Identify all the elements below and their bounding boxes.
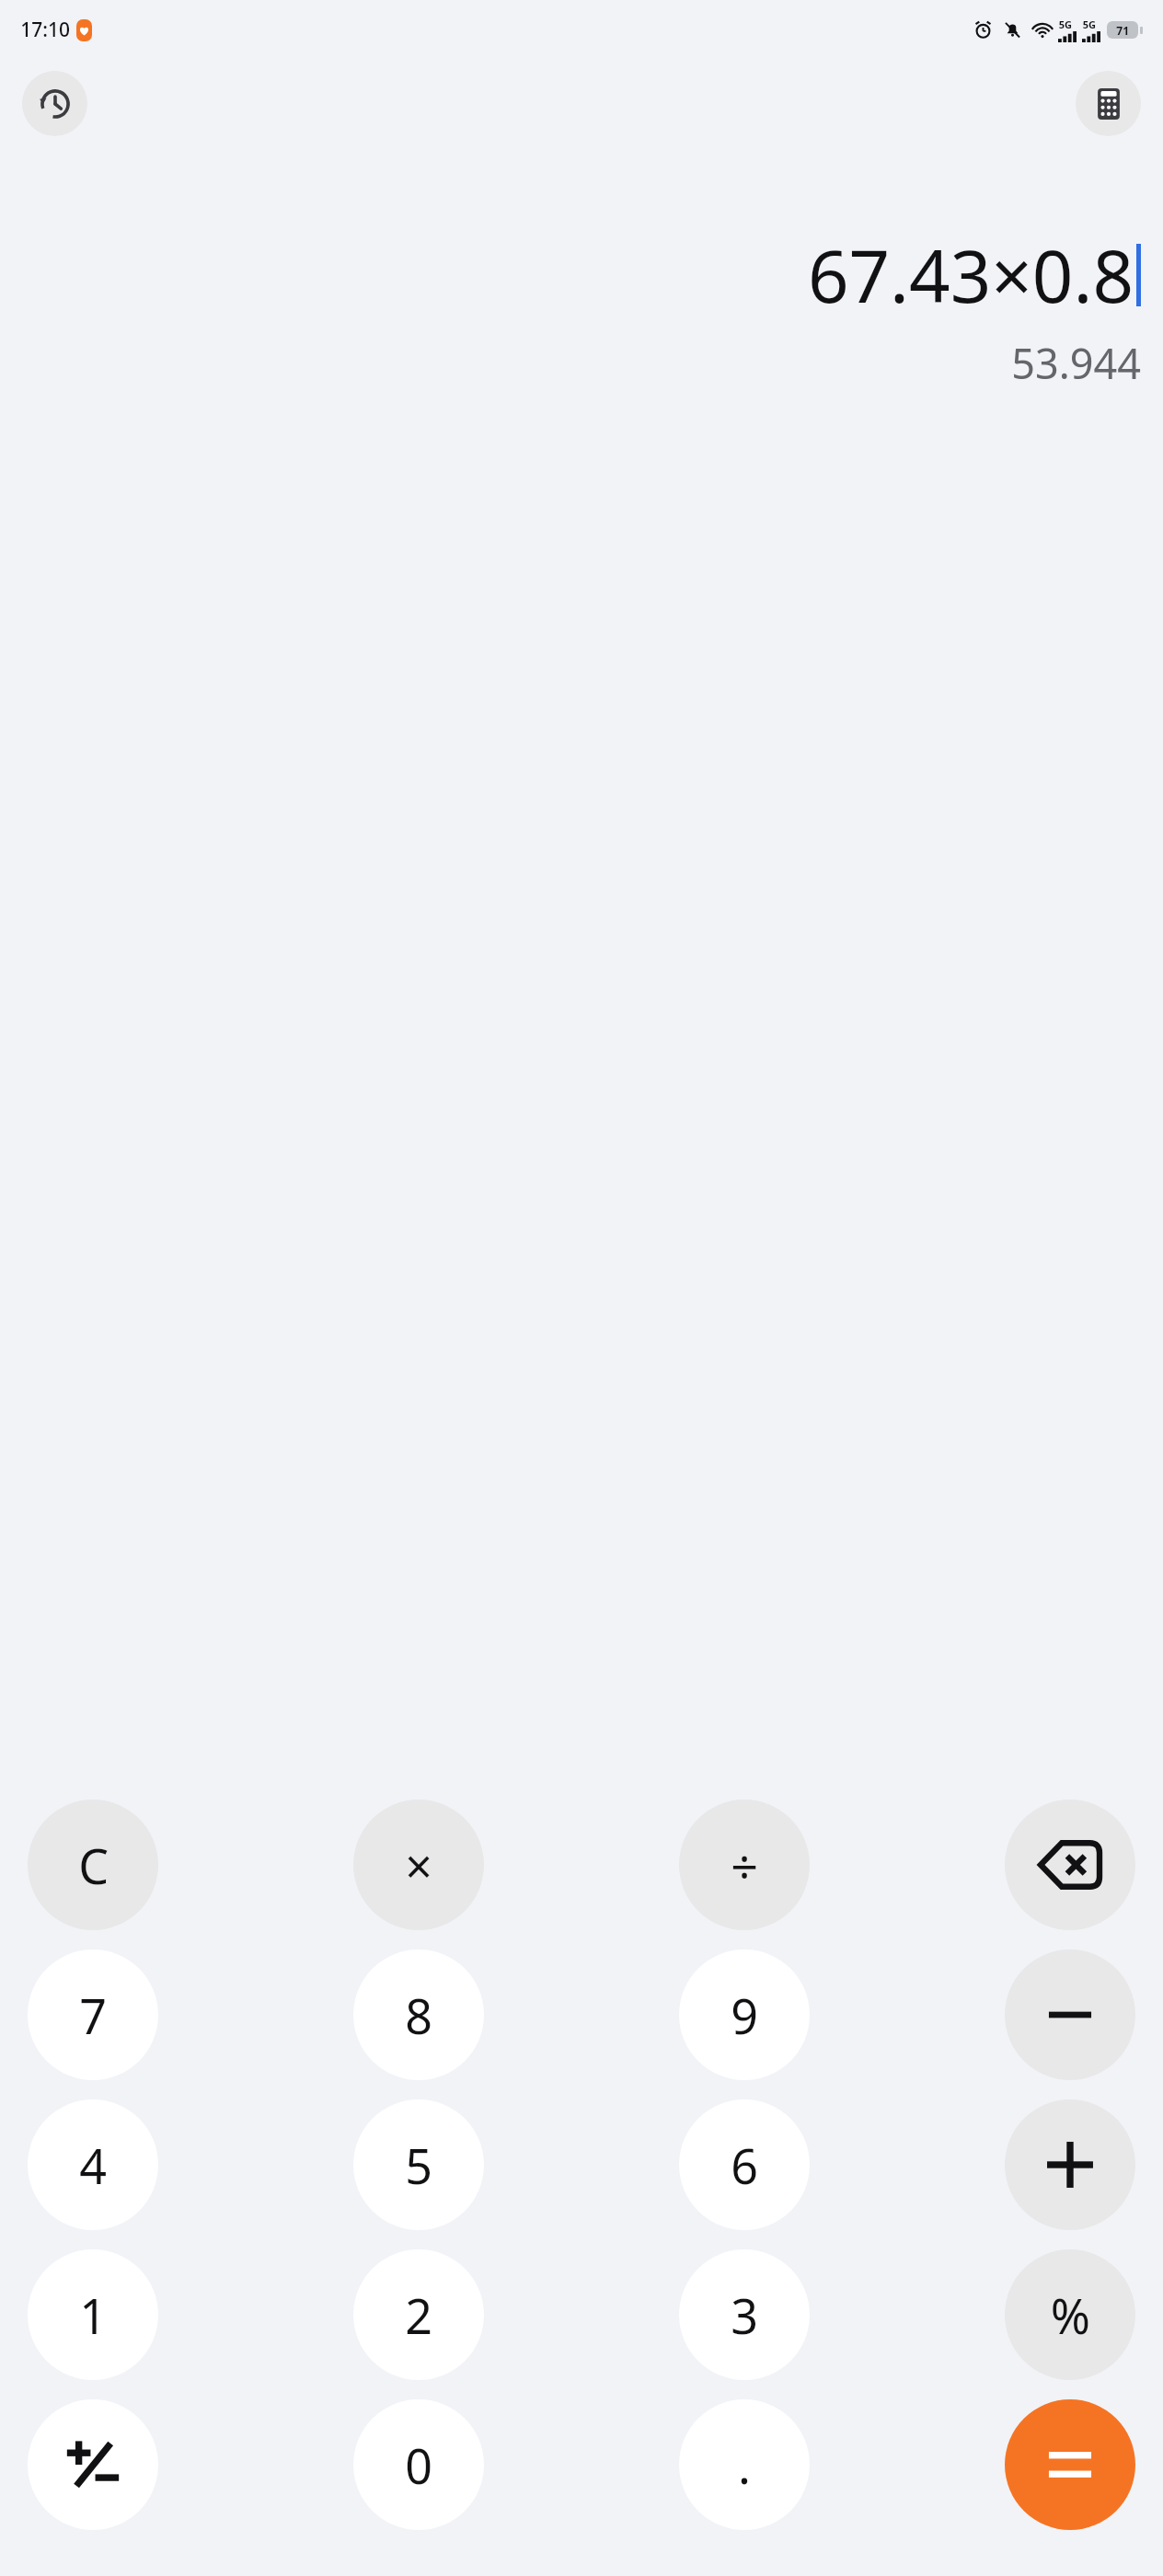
staticText: 5G — [1082, 17, 1096, 31]
button[interactable]: History — [22, 71, 87, 136]
button[interactable]: 3 — [679, 2249, 810, 2380]
button[interactable]: Backspace — [1005, 1800, 1135, 1930]
button[interactable]: Calculator mode — [1076, 71, 1141, 136]
staticText: × — [405, 1833, 432, 1898]
button[interactable]: 4 — [28, 2099, 158, 2230]
staticText: 6 — [731, 2133, 758, 2198]
staticText: 8 — [405, 1983, 432, 2048]
staticText: 4 — [79, 2133, 107, 2198]
staticText: 67.43×0.8 — [807, 226, 1134, 324]
staticText: % — [1050, 2283, 1090, 2348]
button[interactable]: 2 — [353, 2249, 484, 2380]
staticText: ÷ — [731, 1833, 758, 1898]
button[interactable]: 1 — [28, 2249, 158, 2380]
button[interactable]: C — [28, 1800, 158, 1930]
button[interactable]: 0 — [353, 2399, 484, 2530]
staticText: 17:10 — [20, 17, 70, 43]
button[interactable]: × — [353, 1800, 484, 1930]
staticText: 0 — [405, 2432, 432, 2498]
staticText: 71 — [1116, 23, 1129, 38]
staticText: 9 — [731, 1983, 758, 2048]
staticText: 5 — [405, 2133, 432, 2198]
staticText: 3 — [731, 2283, 758, 2348]
staticText: . — [738, 2432, 751, 2498]
button[interactable]: % — [1005, 2249, 1135, 2380]
button[interactable]: 9 — [679, 1949, 810, 2080]
button[interactable]: Minus — [1005, 1949, 1135, 2080]
staticText: 5G — [1058, 17, 1072, 31]
button[interactable]: 5 — [353, 2099, 484, 2230]
button[interactable]: Plus minus sign — [28, 2399, 158, 2530]
button[interactable]: ÷ — [679, 1800, 810, 1930]
button[interactable]: Plus — [1005, 2099, 1135, 2230]
staticText: 53.944 — [1011, 335, 1141, 391]
button[interactable]: . — [679, 2399, 810, 2530]
staticText: 2 — [405, 2283, 432, 2348]
button[interactable]: 8 — [353, 1949, 484, 2080]
staticText: 1 — [79, 2283, 107, 2348]
button[interactable]: 7 — [28, 1949, 158, 2080]
staticText: 7 — [79, 1983, 107, 2048]
button[interactable]: Equals — [1005, 2399, 1135, 2530]
button[interactable]: 6 — [679, 2099, 810, 2230]
staticText: C — [78, 1833, 109, 1898]
